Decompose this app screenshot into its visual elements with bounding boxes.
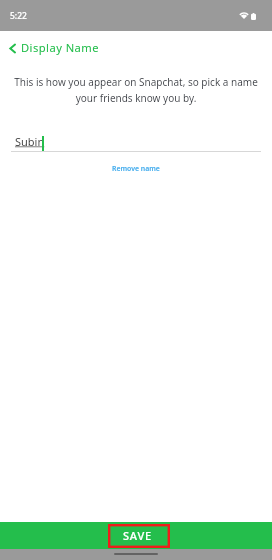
staticText: Subin (15, 134, 45, 149)
staticText: SAVE (123, 528, 152, 543)
button[interactable]: Remove name (106, 161, 166, 176)
button[interactable]: SAVE (0, 522, 272, 549)
button[interactable]: Back (2, 38, 22, 58)
staticText: 5:22 (10, 10, 27, 22)
staticText: This is how you appear on Snapchat, so p… (12, 75, 260, 105)
staticText: Display Name (21, 40, 100, 55)
